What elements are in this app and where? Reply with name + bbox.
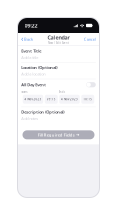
- staticText: Event Title: [21, 48, 41, 53]
- staticText: New / Edit Event: [48, 41, 69, 45]
- staticText: Add a title: [21, 55, 38, 60]
- staticText: Add a location: [21, 71, 45, 77]
- staticText: All Day Event: [21, 82, 46, 87]
- staticText: Ends: [59, 90, 65, 94]
- staticText: Cancel: [84, 37, 96, 42]
- staticText: Calendar: [47, 34, 69, 41]
- button[interactable]: 10:15: [81, 95, 94, 104]
- staticText: Description (Optional): [21, 109, 64, 115]
- staticText: 4 Nov 2023: [61, 97, 78, 101]
- staticText: Fill Required Fields: [38, 132, 75, 137]
- staticText: 4 Nov 2023: [24, 97, 41, 101]
- button[interactable]: 4 Nov 2023: [59, 95, 80, 104]
- button[interactable]: Fill Required Fields: [22, 130, 94, 139]
- staticText: 10:15: [83, 97, 92, 101]
- button[interactable]: Back: [18, 34, 33, 44]
- staticText: Back: [24, 37, 33, 42]
- staticText: Starts: [21, 90, 27, 94]
- button[interactable]: Cancel: [84, 34, 99, 44]
- button[interactable]: 4 Nov 2023: [23, 95, 43, 104]
- staticText: 09:15: [47, 97, 56, 101]
- staticText: Add notes: [21, 116, 38, 121]
- button[interactable]: 09:15: [45, 95, 58, 104]
- staticText: 09:22: [24, 22, 37, 29]
- staticText: Location (Optional): [21, 65, 57, 70]
